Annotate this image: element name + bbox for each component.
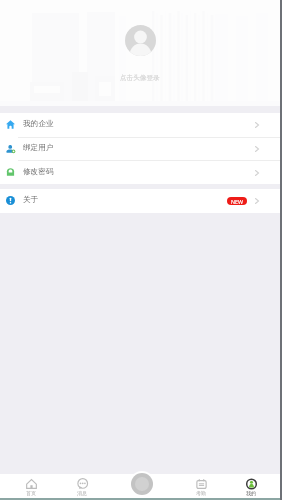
staticText: 考勤 xyxy=(196,490,206,496)
staticText: 修改密码 xyxy=(23,167,54,177)
button[interactable]: Tap avatar to log in xyxy=(125,25,156,56)
staticText: 绑定用户 xyxy=(23,143,54,153)
button[interactable]: 我的 xyxy=(229,474,273,500)
button[interactable]: 消息 xyxy=(60,474,104,500)
button[interactable]: 关于 xyxy=(0,189,280,213)
button[interactable]: 首页 xyxy=(9,474,53,500)
staticText: 关于 xyxy=(23,195,39,205)
staticText: 点击头像登录 xyxy=(120,74,160,82)
button[interactable]: Scan xyxy=(131,473,153,495)
button[interactable]: 修改密码 xyxy=(0,161,280,184)
staticText: 首页 xyxy=(26,490,36,496)
staticText: 我的企业 xyxy=(23,119,54,129)
staticText: 我的 xyxy=(246,490,256,496)
button[interactable]: 我的企业 xyxy=(0,113,280,137)
button[interactable]: 绑定用户 xyxy=(0,138,280,160)
button[interactable]: 考勤 xyxy=(179,474,223,500)
staticText: NEW xyxy=(231,198,244,205)
staticText: 消息 xyxy=(77,490,87,496)
